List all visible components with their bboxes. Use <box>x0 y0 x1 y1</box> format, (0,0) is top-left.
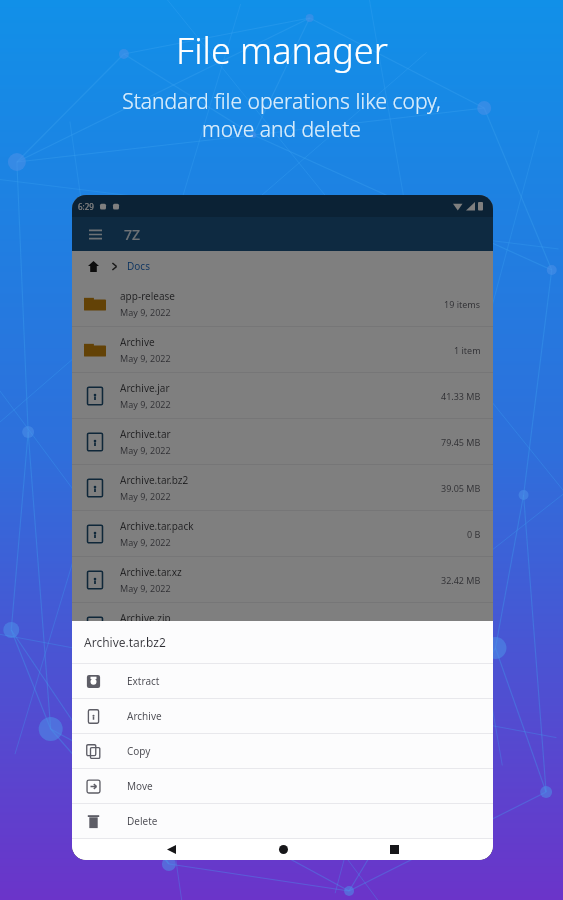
staticText: 1 item <box>454 344 481 356</box>
staticText: 6:29 <box>78 201 94 212</box>
staticText: 39.05 MB <box>441 482 481 494</box>
staticText: app-release <box>120 289 175 303</box>
staticText: Extract <box>127 674 160 688</box>
staticText: Archive.tar.xz <box>120 565 182 579</box>
button[interactable]: Extract <box>72 664 493 698</box>
button[interactable]: Menu <box>84 223 106 245</box>
staticText: May 9, 2022 <box>120 628 171 640</box>
button[interactable]: Home <box>84 257 102 275</box>
button[interactable]: Home <box>270 839 296 860</box>
button[interactable]: Archive.tar.bz2 <box>72 465 493 510</box>
button[interactable]: Archive.tar.xz <box>72 557 493 602</box>
staticText: File manager <box>176 26 388 75</box>
staticText: Delete <box>127 814 158 828</box>
button[interactable]: Back <box>158 839 184 860</box>
staticText: Move <box>127 779 153 793</box>
staticText: May 9, 2022 <box>120 490 171 502</box>
staticText: May 9, 2022 <box>120 582 171 594</box>
button[interactable]: Archive <box>72 699 493 733</box>
staticText: Docs <box>127 259 150 273</box>
button[interactable]: Archive.tar.pack <box>72 511 493 556</box>
staticText: 32.42 MB <box>441 574 481 586</box>
button[interactable]: Copy <box>72 734 493 768</box>
staticText: May 9, 2022 <box>120 444 171 456</box>
staticText: 7Z <box>124 225 141 244</box>
staticText: Archive.tar <box>120 427 171 441</box>
staticText: May 9, 2022 <box>120 306 171 318</box>
button[interactable]: Delete <box>72 804 493 838</box>
staticText: Archive <box>120 335 155 349</box>
button[interactable]: Move <box>72 769 493 803</box>
staticText: Archive.tar.pack <box>120 519 194 533</box>
button[interactable]: app-release <box>72 281 493 326</box>
staticText: May 9, 2022 <box>120 536 171 548</box>
staticText: 79.45 MB <box>441 436 481 448</box>
staticText: 0 B <box>467 528 481 540</box>
button[interactable]: Archive.zip <box>72 603 493 648</box>
button[interactable]: Docs <box>127 259 150 273</box>
staticText: Standard file operations like copy, move… <box>122 87 441 143</box>
staticText: Archive.tar.bz2 <box>120 473 189 487</box>
staticText: May 9, 2022 <box>120 398 171 410</box>
staticText: May 9, 2022 <box>120 352 171 364</box>
staticText: Archive <box>127 709 162 723</box>
staticText: Archive.zip <box>120 611 171 625</box>
button[interactable]: Archive <box>72 327 493 372</box>
staticText: 19 items <box>444 298 481 310</box>
button[interactable]: Archive.tar.bz2 <box>72 621 493 663</box>
staticText: 41.33 MB <box>441 390 481 402</box>
staticText: 18.00 MB <box>441 620 481 632</box>
button[interactable]: Archive.jar <box>72 373 493 418</box>
staticText: Archive.tar.bz2 <box>84 634 166 650</box>
button[interactable]: Recents <box>381 839 407 860</box>
staticText: Copy <box>127 744 151 758</box>
button[interactable]: Archive.tar <box>72 419 493 464</box>
staticText: Archive.jar <box>120 381 170 395</box>
